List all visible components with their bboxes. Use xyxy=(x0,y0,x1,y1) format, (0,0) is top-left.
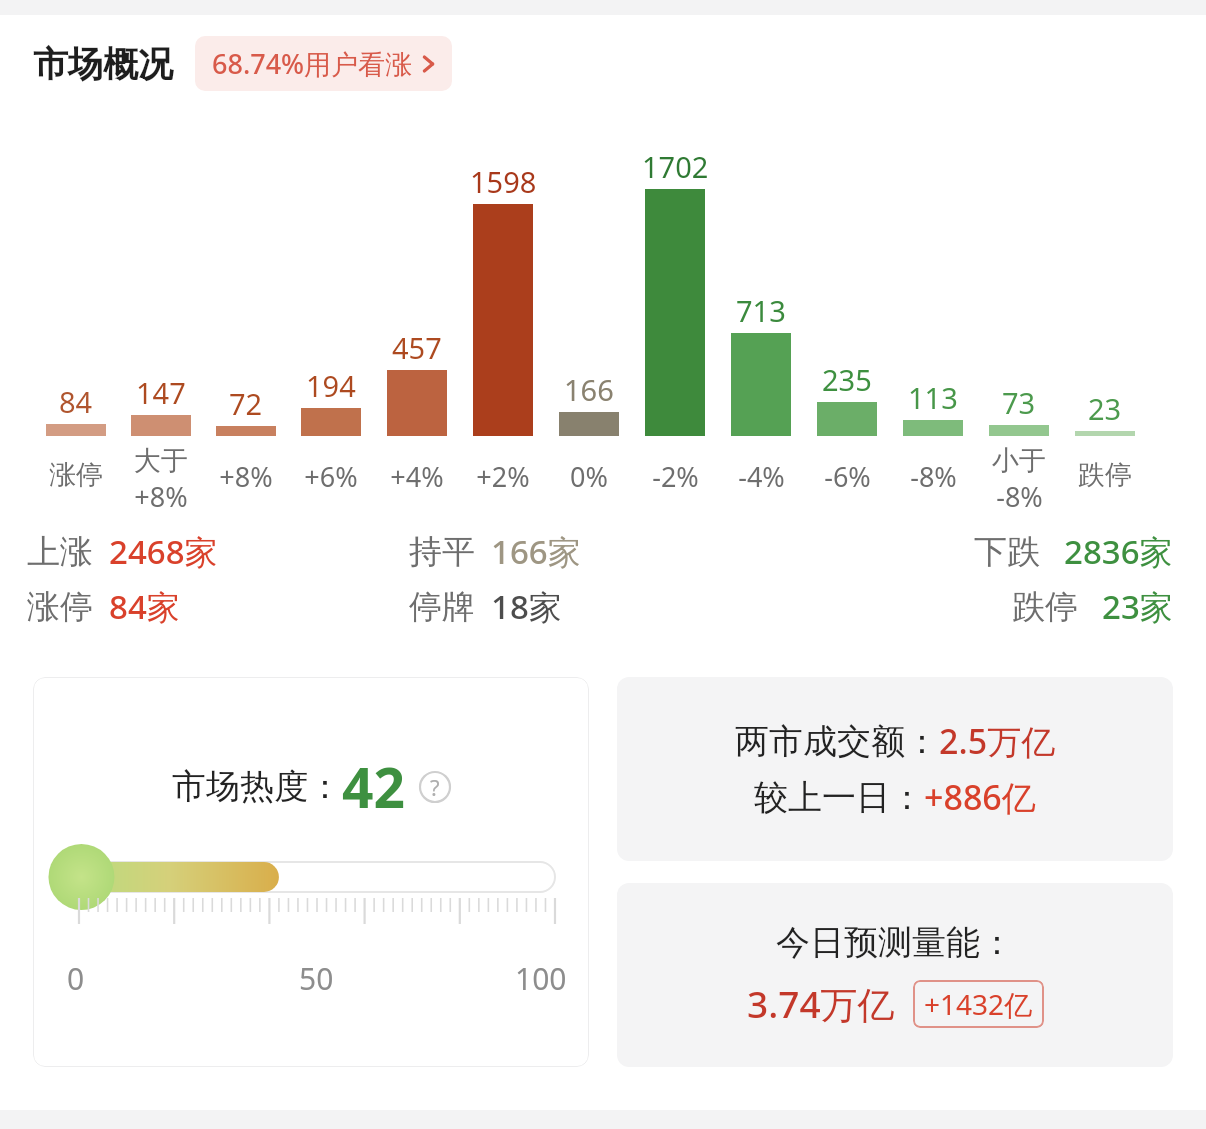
staticText: 涨停 xyxy=(49,458,103,492)
staticText: 18家 xyxy=(491,584,562,629)
staticText: 23 xyxy=(1088,389,1122,428)
button[interactable]: 帮助说明 xyxy=(419,771,451,803)
staticText: 1702 xyxy=(642,147,709,186)
staticText: 两市成交额： xyxy=(735,720,939,763)
staticText: 大于 xyxy=(134,444,188,478)
staticText: 147 xyxy=(136,373,186,412)
staticText: 235 xyxy=(822,360,872,399)
staticText: 0% xyxy=(570,458,608,495)
staticText: 跌停 xyxy=(1012,586,1078,628)
staticText: 68.74%用户看涨 xyxy=(212,45,413,82)
staticText: 1598 xyxy=(470,162,537,201)
button[interactable]: 市场热度： xyxy=(33,677,589,1067)
staticText: -2% xyxy=(652,458,699,495)
button[interactable]: 两市成交额： xyxy=(617,677,1173,861)
staticText: 2.5万亿 xyxy=(939,718,1056,764)
staticText: 713 xyxy=(736,291,786,330)
button[interactable]: 今日预测量能： xyxy=(617,883,1173,1067)
staticText: 持平 xyxy=(409,531,475,573)
staticText: ? xyxy=(430,772,440,802)
staticText: 84 xyxy=(59,382,93,421)
staticText: 23家 xyxy=(1102,584,1173,629)
staticText: 上涨 xyxy=(27,531,93,573)
staticText: 下跌 xyxy=(974,531,1040,573)
staticText: -8% xyxy=(910,458,957,495)
staticText: 84家 xyxy=(109,584,180,629)
staticText: +1432亿 xyxy=(924,985,1033,1023)
staticText: 2468家 xyxy=(109,529,218,574)
staticText: +886亿 xyxy=(924,774,1036,820)
staticText: +8% xyxy=(219,458,273,495)
staticText: 2836家 xyxy=(1064,529,1173,574)
staticText: 457 xyxy=(392,328,442,367)
staticText: -6% xyxy=(824,458,871,495)
staticText: 跌停 xyxy=(1078,458,1132,492)
staticText: 涨停 xyxy=(27,586,93,628)
staticText: +2% xyxy=(476,458,530,495)
staticText: 166家 xyxy=(491,529,581,574)
staticText: +8% xyxy=(134,478,188,515)
staticText: -8% xyxy=(996,478,1043,515)
staticText: 3.74万亿 xyxy=(747,978,895,1029)
staticText: 194 xyxy=(306,366,356,405)
staticText: 50 xyxy=(299,958,334,999)
button[interactable]: 68.74%用户看涨 xyxy=(195,36,452,91)
staticText: 停牌 xyxy=(409,586,475,628)
staticText: 113 xyxy=(908,378,958,417)
staticText: 42 xyxy=(342,749,405,824)
staticText: 73 xyxy=(1002,383,1036,422)
staticText: +4% xyxy=(390,458,444,495)
staticText: 166 xyxy=(564,370,614,409)
staticText: 今日预测量能： xyxy=(776,921,1014,964)
staticText: 市场热度： xyxy=(172,765,342,808)
staticText: 较上一日： xyxy=(754,776,924,819)
staticText: 72 xyxy=(229,384,263,423)
staticText: +6% xyxy=(304,458,358,495)
staticText: 市场概况 xyxy=(33,42,173,86)
staticText: 100 xyxy=(515,958,567,999)
staticText: 0 xyxy=(67,958,85,999)
staticText: 小于 xyxy=(992,444,1046,478)
staticText: -4% xyxy=(738,458,785,495)
